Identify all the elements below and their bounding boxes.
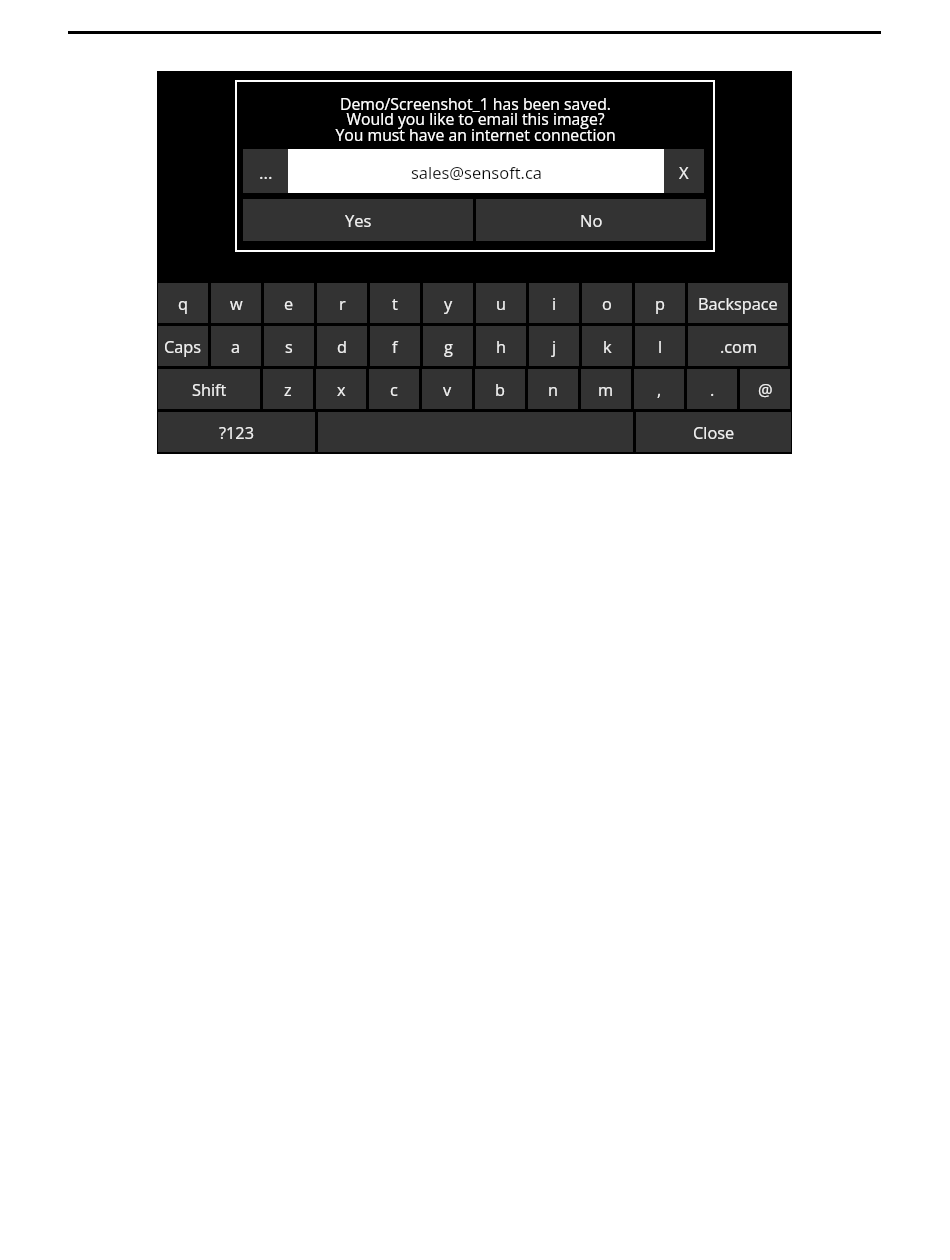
- button[interactable]: s: [264, 326, 314, 366]
- staticText: y: [444, 293, 453, 315]
- button[interactable]: n: [528, 369, 578, 409]
- staticText: i: [552, 293, 557, 315]
- staticText: t: [392, 293, 398, 315]
- staticText: q: [178, 293, 188, 315]
- button[interactable]: ,: [634, 369, 684, 409]
- button[interactable]: q: [158, 283, 208, 323]
- staticText: m: [598, 379, 614, 401]
- button[interactable]: Caps: [158, 326, 208, 366]
- staticText: d: [337, 336, 347, 358]
- staticText: .com: [720, 336, 757, 358]
- button[interactable]: i: [529, 283, 579, 323]
- button[interactable]: v: [422, 369, 472, 409]
- staticText: f: [392, 336, 398, 358]
- button[interactable]: g: [423, 326, 473, 366]
- button[interactable]: Clear: [664, 149, 704, 193]
- staticText: X: [679, 161, 689, 183]
- button[interactable]: w: [211, 283, 261, 323]
- button[interactable]: o: [582, 283, 632, 323]
- button[interactable]: b: [475, 369, 525, 409]
- staticText: e: [284, 293, 294, 315]
- staticText: @: [758, 379, 773, 401]
- staticText: k: [603, 336, 612, 358]
- staticText: No: [580, 209, 603, 231]
- button[interactable]: a: [211, 326, 261, 366]
- staticText: n: [548, 379, 558, 401]
- button[interactable]: No: [476, 199, 706, 241]
- staticText: a: [231, 336, 241, 358]
- staticText: z: [284, 379, 292, 401]
- button[interactable]: @: [740, 369, 790, 409]
- staticText: Yes: [345, 209, 372, 231]
- staticText: ,: [657, 379, 662, 401]
- staticText: j: [552, 336, 557, 358]
- staticText: r: [339, 293, 346, 315]
- staticText: l: [658, 336, 663, 358]
- staticText: s: [285, 336, 293, 358]
- staticText: b: [495, 379, 505, 401]
- staticText: c: [390, 379, 398, 401]
- button[interactable]: Backspace: [688, 283, 788, 323]
- staticText: ...: [259, 161, 273, 184]
- button[interactable]: Shift: [158, 369, 260, 409]
- staticText: w: [230, 293, 243, 315]
- button[interactable]: d: [317, 326, 367, 366]
- staticText: u: [496, 293, 506, 315]
- button[interactable]: j: [529, 326, 579, 366]
- staticText: v: [443, 379, 452, 401]
- staticText: Demo/Screenshot_1 has been saved. Would …: [335, 93, 616, 146]
- staticText: o: [602, 293, 612, 315]
- button[interactable]: sales@sensoft.ca: [288, 149, 664, 193]
- staticText: Backspace: [698, 293, 778, 315]
- button[interactable]: p: [635, 283, 685, 323]
- staticText: sales@sensoft.ca: [411, 161, 542, 183]
- staticText: .: [710, 379, 715, 401]
- button[interactable]: .: [687, 369, 737, 409]
- staticText: h: [496, 336, 506, 358]
- staticText: x: [337, 379, 346, 401]
- staticText: Close: [693, 422, 735, 444]
- button[interactable]: x: [316, 369, 366, 409]
- button[interactable]: k: [582, 326, 632, 366]
- staticText: Shift: [192, 379, 227, 401]
- button[interactable]: ?123: [158, 412, 315, 452]
- button[interactable]: Close: [636, 412, 791, 452]
- staticText: g: [444, 336, 453, 358]
- staticText: p: [655, 293, 665, 315]
- button[interactable]: h: [476, 326, 526, 366]
- button[interactable]: c: [369, 369, 419, 409]
- button[interactable]: z: [263, 369, 313, 409]
- button[interactable]: l: [635, 326, 685, 366]
- staticText: ?123: [219, 422, 254, 444]
- button[interactable]: r: [317, 283, 367, 323]
- button[interactable]: f: [370, 326, 420, 366]
- button[interactable]: y: [423, 283, 473, 323]
- button[interactable]: u: [476, 283, 526, 323]
- button[interactable]: e: [264, 283, 314, 323]
- button[interactable]: More options: [243, 149, 288, 193]
- button[interactable]: .com: [688, 326, 788, 366]
- staticText: Caps: [164, 336, 202, 358]
- button[interactable]: Yes: [243, 199, 473, 241]
- button[interactable]: t: [370, 283, 420, 323]
- button[interactable]: m: [581, 369, 631, 409]
